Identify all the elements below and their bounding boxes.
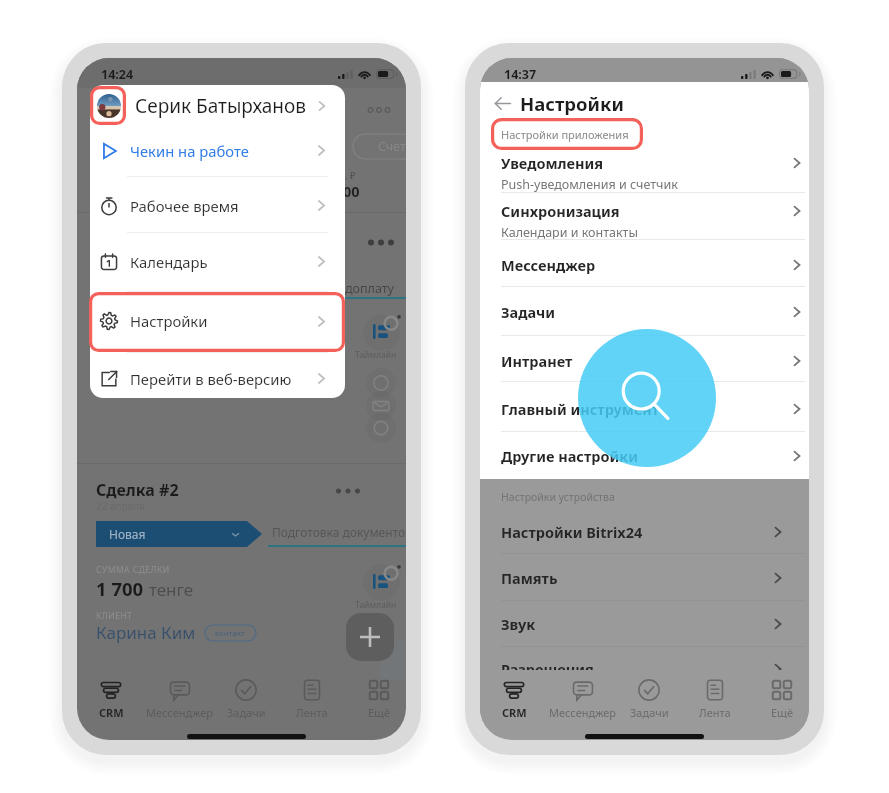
button[interactable]: Уведомления [501, 147, 804, 193]
staticText: 14:24 [101, 66, 134, 83]
staticText: CRM [502, 705, 527, 720]
staticText: Мессенджер [501, 255, 596, 275]
staticText: Память [501, 568, 558, 588]
staticText: Интранет [501, 351, 573, 371]
button[interactable]: Ещё [742, 676, 809, 722]
button[interactable]: Рабочее время [90, 178, 345, 233]
button[interactable]: Лента [675, 676, 755, 722]
staticText: Задачи [630, 705, 669, 720]
staticText: , ₽ [345, 169, 356, 182]
staticText: Уведомления [501, 153, 604, 173]
staticText: Настройки приложения [501, 127, 629, 142]
button[interactable]: Мессенджер [543, 676, 623, 722]
staticText: Задачи [227, 705, 266, 720]
staticText: Новая [109, 526, 146, 542]
staticText: Календари и контакты [501, 224, 638, 241]
button[interactable]: Настройки [90, 292, 345, 350]
button[interactable]: Search [578, 329, 716, 467]
button[interactable]: CRM [77, 676, 151, 722]
staticText: 14:37 [504, 66, 537, 83]
staticText: тенге [149, 578, 194, 601]
button[interactable]: Лента [272, 676, 352, 722]
staticText: Серик Батырханов [135, 93, 307, 119]
staticText: Перейти в веб-версию [130, 369, 292, 389]
button[interactable]: Память [501, 556, 785, 600]
button[interactable]: Add [346, 613, 394, 661]
staticText: Ещё [771, 705, 794, 720]
staticText: Лента [699, 705, 731, 720]
staticText: Push-уведомления и счетчик [501, 176, 678, 193]
staticText: Звук [501, 614, 536, 634]
button[interactable]: Back [494, 89, 511, 117]
button[interactable]: Звук [501, 602, 785, 646]
staticText: Задачи [501, 302, 556, 322]
staticText: Подготовка документов [272, 524, 406, 540]
staticText: Ещё [368, 705, 391, 720]
staticText: СУММА СДЕЛКИ [96, 564, 170, 576]
staticText: Рабочее время [130, 196, 239, 216]
staticText: Мессенджер [146, 705, 214, 720]
button[interactable]: Мессенджер [140, 676, 220, 722]
staticText: Синхронизация [501, 201, 620, 221]
staticText: Настройки [130, 311, 208, 331]
button[interactable]: Настройки Bitrix24 [501, 510, 785, 554]
button[interactable]: CRM [480, 676, 554, 722]
staticText: Лента [296, 705, 328, 720]
staticText: Настройки устройства [501, 490, 615, 504]
staticText: доплату [345, 280, 394, 297]
button[interactable]: Чекин на работе [90, 123, 345, 178]
staticText: КЛИЕНТ [96, 610, 133, 622]
button[interactable]: Ещё [339, 676, 406, 722]
staticText: контакт [215, 628, 246, 638]
button[interactable]: Задачи [206, 676, 286, 722]
staticText: Карина Ким [96, 621, 196, 644]
staticText: Другие настройки [501, 446, 638, 466]
staticText: 00 [343, 181, 360, 201]
staticText: Разрешения [501, 659, 594, 670]
button[interactable]: Другие настройки [501, 440, 804, 474]
button[interactable]: Главный инструмент [501, 393, 804, 427]
staticText: CRM [99, 705, 124, 720]
button[interactable]: Синхронизация [501, 195, 804, 241]
button[interactable]: Интранет [501, 345, 804, 379]
staticText: Таймлайн [355, 349, 397, 361]
staticText: Мессенджер [549, 705, 617, 720]
staticText: Сделка #2 [96, 479, 179, 501]
button[interactable]: Календарь [90, 234, 345, 289]
staticText: Чекин на работе [130, 141, 249, 161]
staticText: Счета [378, 138, 406, 155]
button[interactable]: Перейти в веб-версию [90, 356, 345, 401]
button[interactable]: Разрешения [501, 647, 785, 670]
staticText: Настройки [520, 91, 624, 116]
staticText: Таймлайн [355, 599, 397, 611]
staticText: Главный инструмент [501, 399, 660, 419]
staticText: Календарь [130, 252, 208, 272]
button[interactable]: Мессенджер [501, 249, 804, 283]
staticText: 1 700 [96, 576, 144, 601]
button[interactable]: Задачи [609, 676, 689, 722]
button[interactable]: Серик Батырханов [90, 85, 345, 126]
button[interactable]: Задачи [501, 296, 804, 330]
staticText: Настройки Bitrix24 [501, 522, 643, 542]
